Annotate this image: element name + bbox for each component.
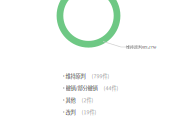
staticText: 其他 (66, 96, 76, 104)
staticText: (799件) (92, 72, 110, 80)
button[interactable]: 其他 (63, 94, 175, 106)
staticText: (19件) (82, 108, 97, 116)
staticText: (44件) (104, 84, 119, 92)
button[interactable]: 改判 (63, 106, 175, 118)
staticText: 撤销/部分撤销 (66, 84, 98, 92)
button[interactable]: 撤销/部分撤销 (63, 82, 175, 94)
staticText: (2件) (82, 96, 94, 104)
staticText: 改判 (66, 108, 76, 116)
button[interactable]: 维持原判 (63, 70, 175, 82)
staticText: 维持原判(89.21%) (126, 44, 156, 50)
staticText: 维持原判 (66, 72, 86, 80)
